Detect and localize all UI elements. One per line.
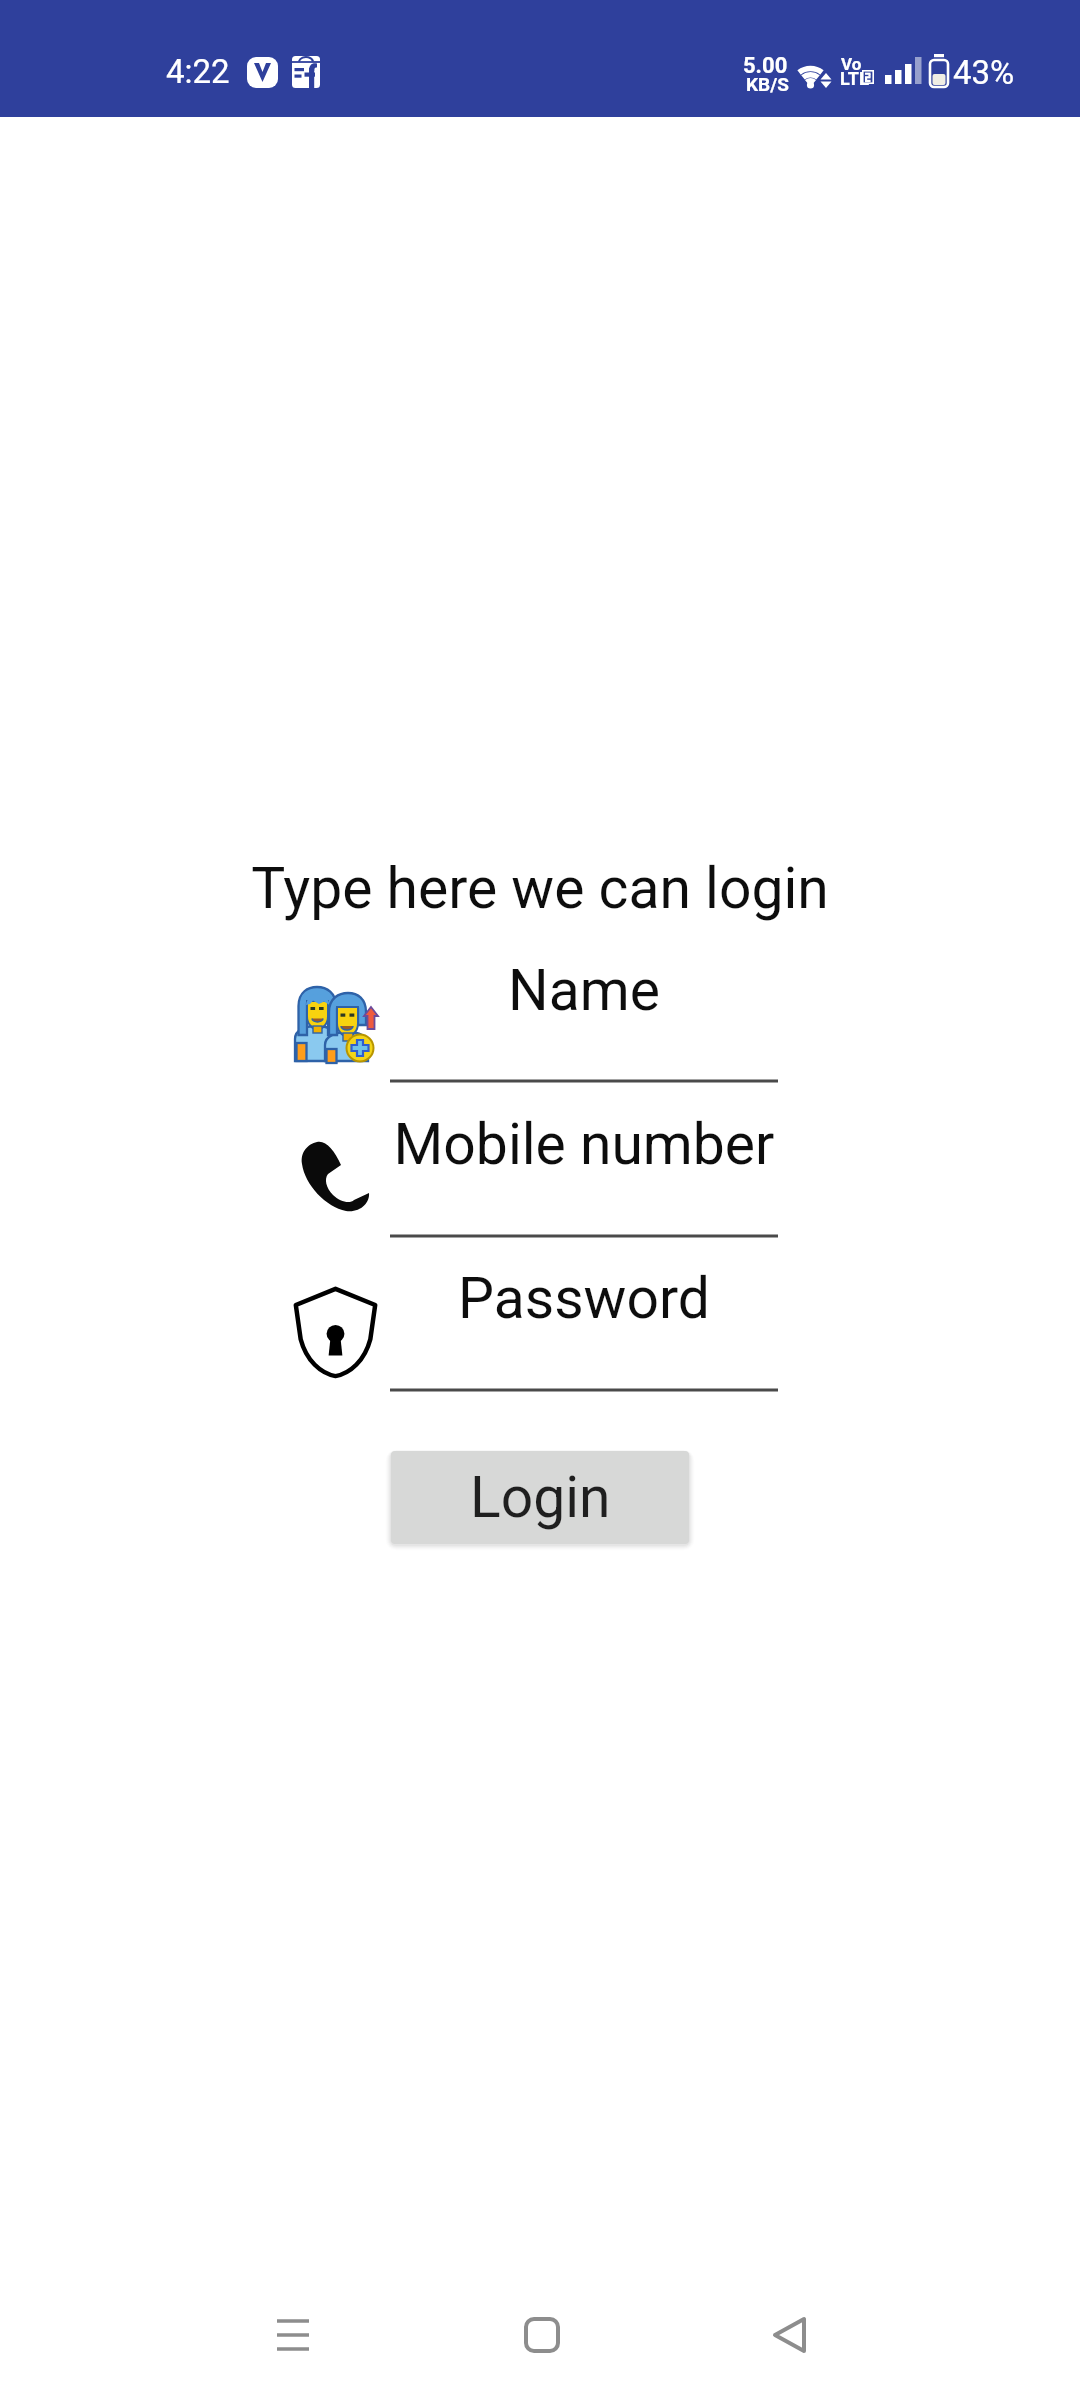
staticText: 5.00 xyxy=(743,53,788,79)
staticText: Password xyxy=(390,1265,778,1332)
staticText: KB/S xyxy=(746,73,789,95)
staticText: Mobile number xyxy=(390,1111,778,1178)
staticText: Type here we can login xyxy=(0,855,1080,922)
staticText: LTE xyxy=(840,68,870,89)
staticText: Login xyxy=(470,1464,611,1531)
button[interactable]: Login xyxy=(391,1451,689,1544)
button[interactable]: Name xyxy=(390,949,778,1083)
button[interactable]: Recent apps xyxy=(248,2290,338,2380)
button[interactable]: Password xyxy=(390,1257,778,1392)
staticText: 43% xyxy=(953,53,1015,92)
staticText: 4:22 xyxy=(166,52,230,91)
staticText: Name xyxy=(390,957,778,1024)
button[interactable]: Home xyxy=(497,2290,587,2380)
button[interactable]: Mobile number xyxy=(390,1103,778,1238)
staticText: Vo xyxy=(841,54,862,74)
button[interactable]: Back xyxy=(745,2290,835,2380)
